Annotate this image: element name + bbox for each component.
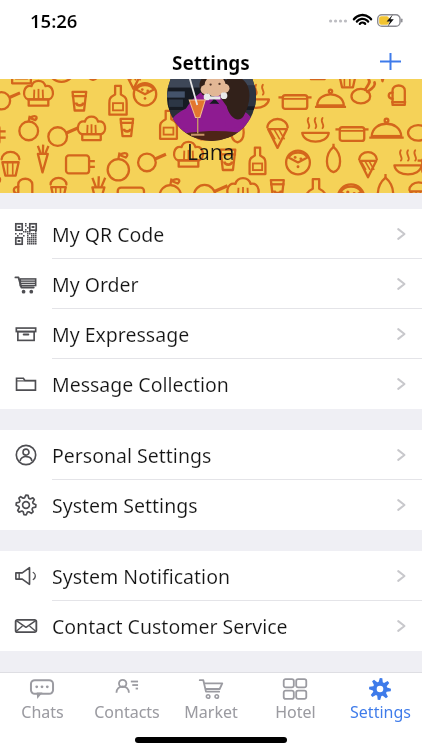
staticText: My Order (52, 271, 139, 298)
staticText: Contact Customer Service (52, 613, 288, 640)
button[interactable]: Hotel (253, 673, 337, 727)
button[interactable]: Personal Settings (0, 430, 422, 480)
button[interactable]: Market (169, 673, 253, 727)
staticText: My QR Code (52, 221, 165, 248)
button[interactable]: System Settings (0, 480, 422, 530)
staticText: System Notification (52, 563, 230, 590)
staticText: Settings (172, 50, 250, 76)
button[interactable]: System Notification (0, 551, 422, 601)
staticText: Lana (187, 138, 235, 167)
button[interactable]: Chats (0, 673, 84, 727)
button[interactable]: My QR Code (0, 209, 422, 259)
button[interactable]: Contact Customer Service (0, 601, 422, 651)
staticText: Message Collection (52, 371, 229, 398)
staticText: System Settings (52, 492, 198, 519)
staticText: 15:26 (30, 8, 78, 33)
button[interactable]: My Order (0, 259, 422, 309)
staticText: Personal Settings (52, 442, 212, 469)
button[interactable]: Settings (338, 673, 422, 727)
button[interactable]: Profile photo (167, 79, 256, 141)
button[interactable]: Contacts (85, 673, 169, 727)
staticText: Market (184, 701, 238, 723)
staticText: Settings (350, 701, 411, 723)
button[interactable]: My Expressage (0, 309, 422, 359)
button[interactable]: Add (369, 40, 411, 79)
staticText: Chats (21, 701, 64, 723)
button[interactable]: Message Collection (0, 359, 422, 409)
staticText: My Expressage (52, 321, 190, 348)
staticText: Hotel (275, 701, 316, 723)
staticText: Contacts (94, 701, 160, 723)
